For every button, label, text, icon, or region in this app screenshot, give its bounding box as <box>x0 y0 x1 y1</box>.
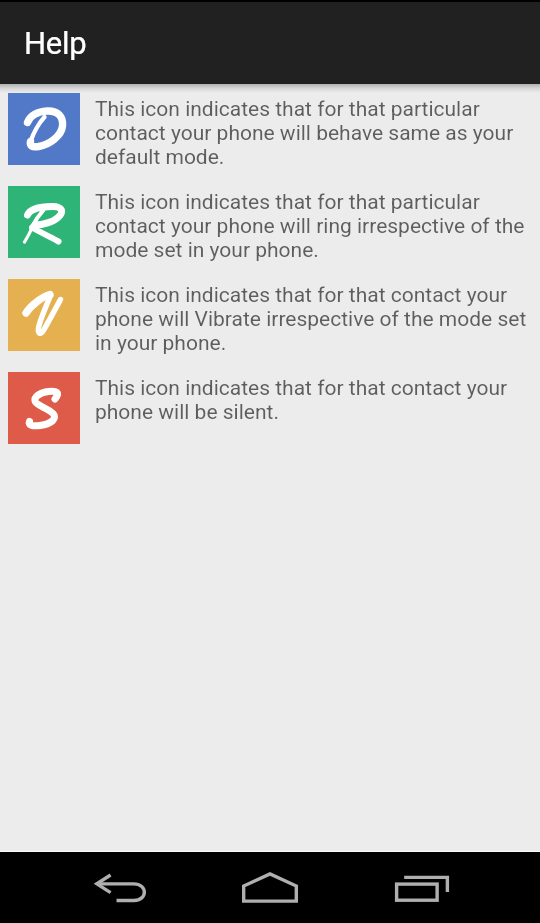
button[interactable]: Ring mode icon <box>8 186 80 258</box>
button[interactable]: Default mode icon <box>8 93 80 165</box>
button[interactable]: Vibrate mode icon <box>8 279 80 351</box>
button[interactable]: Silent mode icon <box>8 372 80 444</box>
button[interactable]: Home <box>228 852 312 923</box>
staticText: Help <box>24 25 87 61</box>
staticText: This icon indicates that for that partic… <box>95 97 536 169</box>
button[interactable]: Back <box>81 852 165 923</box>
staticText: This icon indicates that for that contac… <box>95 283 536 355</box>
button[interactable]: Recent apps <box>380 852 464 923</box>
staticText: This icon indicates that for that partic… <box>95 190 536 262</box>
staticText: This icon indicates that for that contac… <box>95 376 536 424</box>
